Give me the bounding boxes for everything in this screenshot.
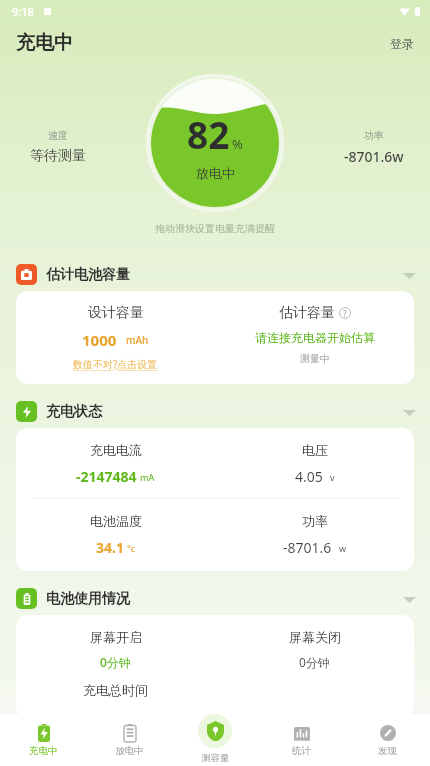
staticText: 统计 [292,745,311,757]
staticText: 0分钟 [100,654,131,670]
button[interactable]: 放电中 [86,714,172,766]
staticText: mA [140,471,155,483]
staticText: w [339,542,347,554]
staticText: -8701.6 [283,538,332,557]
staticText: 电压 [302,442,328,458]
button[interactable]: 估计电池容量 [0,260,430,291]
button[interactable]: 测容量 [172,714,258,766]
button[interactable]: 充电状态 [0,397,430,428]
staticText: 功率 [364,129,384,142]
staticText: 放电中 [196,165,235,181]
button[interactable]: 统计 [258,714,344,766]
staticText: 估计容量 [279,304,335,322]
staticText: 0分钟 [299,654,330,670]
staticText: -2147484 [76,467,137,486]
staticText: 拖动滑块设置电量充满提醒 [155,222,275,235]
other: 折叠 [403,408,416,416]
staticText: 放电中 [115,745,144,757]
staticText: % [232,135,243,153]
staticText: 9:18 [12,4,34,19]
staticText: 34.1 [96,538,124,557]
staticText: 估计电池容量 [46,266,130,284]
button[interactable]: 登录 [374,28,430,59]
staticText: 测量中 [300,352,330,365]
staticText: 电池使用情况 [46,590,130,608]
button[interactable]: 电池使用情况 [0,584,430,615]
staticText: v [330,471,335,483]
staticText: 发现 [378,745,397,757]
staticText: 4.05 [295,467,323,486]
staticText: 速度 [48,129,68,142]
staticText: 1000 [82,330,117,350]
button[interactable]: 充电中 [0,714,86,766]
staticText: 数值不对?点击设置 [73,357,158,371]
staticText: 充电状态 [46,403,102,421]
staticText: 充电中 [29,745,58,757]
button[interactable]: 电池电量 82% [146,74,284,212]
button[interactable]: 发现 [344,714,430,766]
staticText: 等待测量 [30,147,86,165]
other: 折叠 [403,595,416,603]
staticText: °c [127,542,136,554]
staticText: 设计容量 [88,304,144,322]
staticText: 屏幕开启 [90,629,142,645]
staticText: 测容量 [201,752,230,764]
button[interactable]: 数值不对?点击设置 [73,357,158,371]
staticText: 充电电流 [90,442,142,458]
staticText: 功率 [302,513,328,529]
staticText: mAh [126,333,149,347]
staticText: 屏幕关闭 [289,629,341,645]
staticText: 82 [187,109,230,159]
staticText: 电池温度 [90,513,142,529]
staticText: 充电总时间 [16,682,215,698]
staticText: ? [343,308,347,319]
staticText: 登录 [390,36,414,51]
button[interactable]: 帮助 [339,307,351,319]
other: 折叠 [403,271,416,279]
staticText: 充电中 [16,31,73,55]
staticText: 请连接充电器开始估算 [255,330,375,345]
staticText: -8701.6w [344,147,404,166]
